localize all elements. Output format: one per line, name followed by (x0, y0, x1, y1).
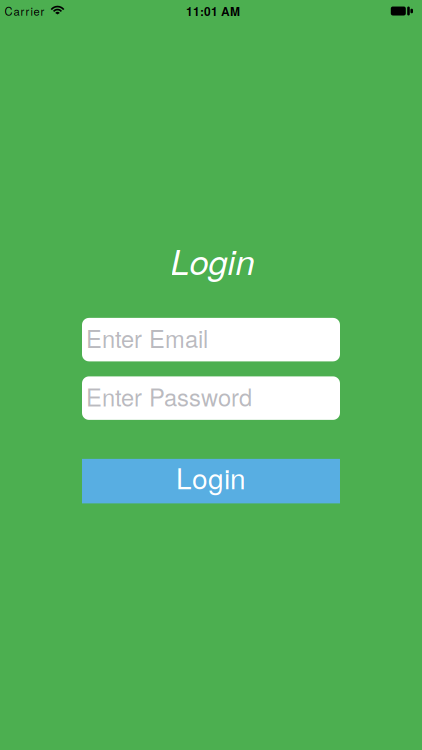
staticText: 11:01 AM (186, 2, 240, 20)
button[interactable]: Login (82, 459, 340, 503)
staticText: Login (176, 457, 246, 497)
staticText: Enter Email (86, 321, 208, 355)
staticText: Enter Password (86, 379, 252, 413)
secureTextField[interactable]: Enter Password (82, 376, 340, 420)
staticText: Login (170, 236, 254, 285)
textField[interactable]: Enter Email (82, 318, 340, 361)
staticText: C a r r i e r (4, 3, 44, 19)
